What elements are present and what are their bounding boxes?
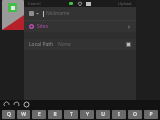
button[interactable]: Comments <box>68 1 73 6</box>
other: Choose folder <box>126 42 131 47</box>
staticText: I <box>118 111 120 118</box>
staticText: Q <box>7 111 11 118</box>
staticText: P <box>149 111 153 118</box>
button[interactable]: P <box>144 110 158 119</box>
staticText: Y <box>86 111 89 118</box>
staticText: O <box>133 111 137 118</box>
button[interactable]: Y <box>80 110 94 119</box>
button[interactable]: Attach image <box>86 1 91 6</box>
staticText: Local Path <box>29 41 54 48</box>
staticText: W <box>21 111 26 118</box>
button[interactable]: Emoji <box>23 101 30 108</box>
staticText: E <box>38 111 41 118</box>
staticText: Upload <box>118 1 132 6</box>
button[interactable]: Upload <box>117 1 133 6</box>
button[interactable] <box>2 0 24 30</box>
staticText: Sites <box>37 23 49 30</box>
button[interactable]: Nickname <box>24 7 136 20</box>
button[interactable]: R <box>48 110 62 119</box>
button[interactable]: I <box>112 110 126 119</box>
button[interactable]: O <box>128 110 142 119</box>
button[interactable]: Cancel <box>27 1 42 6</box>
button[interactable]: W <box>17 110 30 119</box>
staticText: Nickname <box>46 10 70 17</box>
button[interactable]: Redo <box>13 101 20 108</box>
button[interactable]: U <box>96 110 110 119</box>
button[interactable]: Sites <box>24 21 136 32</box>
button[interactable]: E <box>32 110 46 119</box>
button[interactable]: Undo <box>3 101 10 108</box>
button[interactable]: Local Path <box>24 39 136 50</box>
staticText: T <box>70 111 73 118</box>
staticText: U <box>101 111 105 118</box>
staticText: None <box>58 41 71 48</box>
staticText: Cancel <box>28 1 41 6</box>
staticText: R <box>53 111 57 118</box>
button[interactable]: Privacy <box>77 1 82 6</box>
button[interactable]: Q <box>2 110 15 119</box>
button[interactable]: T <box>64 110 78 119</box>
